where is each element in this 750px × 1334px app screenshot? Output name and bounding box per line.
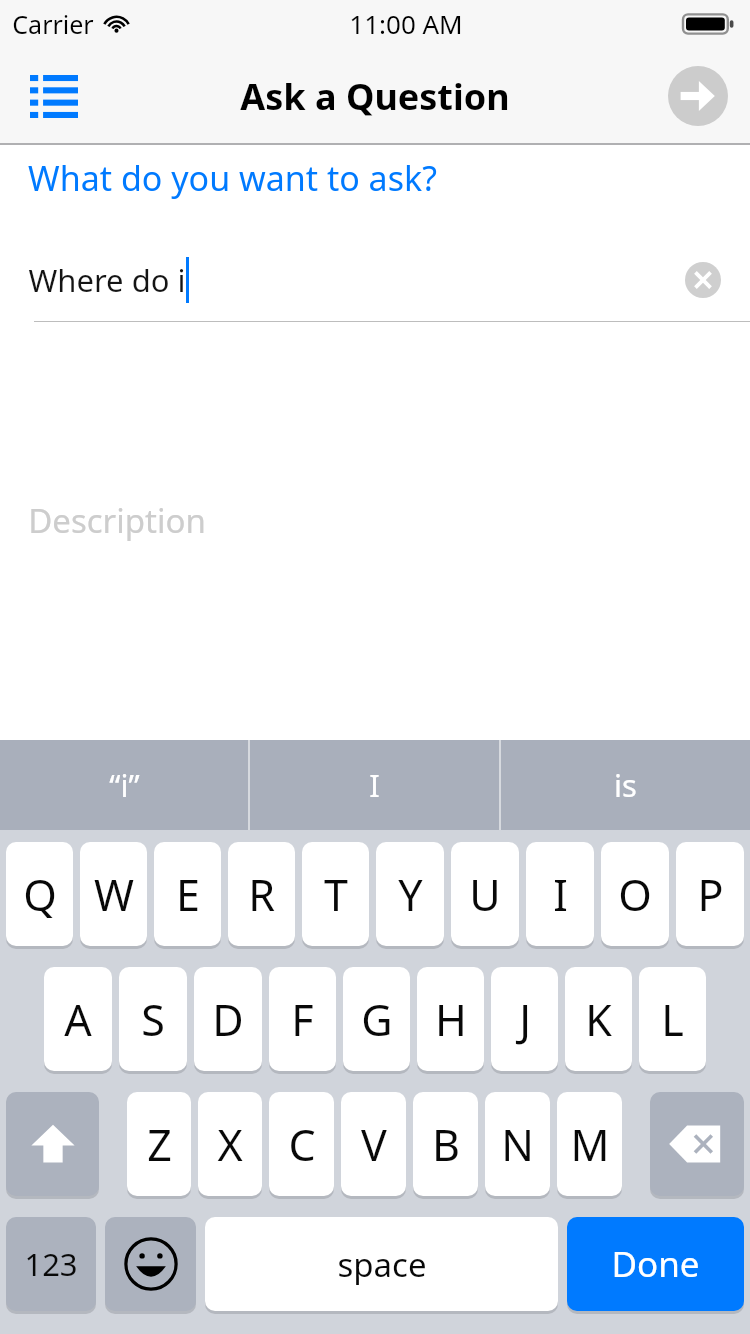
staticText: 123 xyxy=(24,1243,78,1285)
button[interactable]: Submit question xyxy=(664,62,732,130)
button[interactable]: Done xyxy=(567,1217,744,1311)
staticText: Done xyxy=(611,1240,700,1288)
button[interactable]: Z xyxy=(127,1092,191,1196)
button[interactable]: Q xyxy=(6,842,73,946)
button[interactable]: N xyxy=(485,1092,550,1196)
button[interactable]: L xyxy=(639,967,706,1071)
staticText: C xyxy=(288,1115,316,1174)
staticText: is xyxy=(614,764,637,806)
button[interactable]: A xyxy=(44,967,112,1071)
staticText: S xyxy=(141,990,165,1049)
button[interactable]: W xyxy=(80,842,147,946)
staticText: M xyxy=(570,1115,610,1174)
button[interactable]: S xyxy=(119,967,187,1071)
button[interactable]: K xyxy=(565,967,632,1071)
button[interactable]: Clear text xyxy=(682,259,724,301)
staticText: G xyxy=(361,990,393,1049)
button[interactable]: I xyxy=(250,740,499,830)
staticText: “i” xyxy=(109,764,140,806)
staticText: X xyxy=(217,1115,243,1174)
button[interactable]: B xyxy=(413,1092,478,1196)
staticText: K xyxy=(585,990,612,1049)
staticText: I xyxy=(369,764,380,806)
button[interactable]: is xyxy=(501,740,750,830)
button[interactable]: H xyxy=(417,967,484,1071)
button[interactable]: O xyxy=(601,842,669,946)
staticText: U xyxy=(469,865,501,924)
staticText: Ask a Question xyxy=(240,72,510,121)
staticText: Y xyxy=(398,865,423,924)
staticText: Where do i xyxy=(28,259,186,301)
button[interactable]: Shift xyxy=(6,1092,99,1196)
staticText: I xyxy=(553,865,568,924)
button[interactable]: “i” xyxy=(0,740,248,830)
staticText: O xyxy=(618,865,652,924)
staticText: R xyxy=(248,865,275,924)
staticText: N xyxy=(501,1115,534,1174)
button[interactable]: I xyxy=(526,842,594,946)
button[interactable]: V xyxy=(341,1092,406,1196)
staticText: What do you want to ask? xyxy=(28,155,437,201)
staticText: Z xyxy=(147,1115,172,1174)
staticText: 11:00 AM xyxy=(349,6,463,41)
staticText: V xyxy=(361,1115,387,1174)
button[interactable]: Menu xyxy=(16,58,92,134)
button[interactable]: D xyxy=(194,967,262,1071)
button[interactable]: G xyxy=(343,967,410,1071)
button[interactable]: P xyxy=(676,842,744,946)
button[interactable]: C xyxy=(269,1092,334,1196)
staticText: W xyxy=(94,865,134,924)
staticText: J xyxy=(519,990,531,1049)
button[interactable]: M xyxy=(557,1092,622,1196)
staticText: Q xyxy=(23,865,57,924)
staticText: L xyxy=(661,990,684,1049)
staticText: A xyxy=(64,990,92,1049)
staticText: T xyxy=(324,865,348,924)
staticText: space xyxy=(337,1242,427,1287)
button[interactable]: Description xyxy=(28,498,750,543)
staticText: B xyxy=(432,1115,460,1174)
staticText: Carrier xyxy=(12,7,94,41)
button[interactable]: Backspace xyxy=(650,1092,744,1196)
staticText: H xyxy=(435,990,467,1049)
staticText: D xyxy=(212,990,244,1049)
button[interactable]: X xyxy=(198,1092,262,1196)
button[interactable]: J xyxy=(491,967,558,1071)
staticText: E xyxy=(176,865,200,924)
button[interactable]: Where do i xyxy=(28,247,724,313)
staticText: F xyxy=(291,990,314,1049)
button[interactable]: Y xyxy=(376,842,444,946)
staticText: P xyxy=(697,865,724,924)
button[interactable]: E xyxy=(154,842,221,946)
staticText: Description xyxy=(28,498,206,543)
button[interactable]: F xyxy=(269,967,336,1071)
button[interactable]: R xyxy=(228,842,295,946)
button[interactable]: 123 xyxy=(6,1217,96,1311)
button[interactable]: U xyxy=(451,842,519,946)
button[interactable]: T xyxy=(302,842,369,946)
button[interactable]: space xyxy=(205,1217,558,1311)
button[interactable]: Emoji keyboard xyxy=(105,1217,196,1311)
